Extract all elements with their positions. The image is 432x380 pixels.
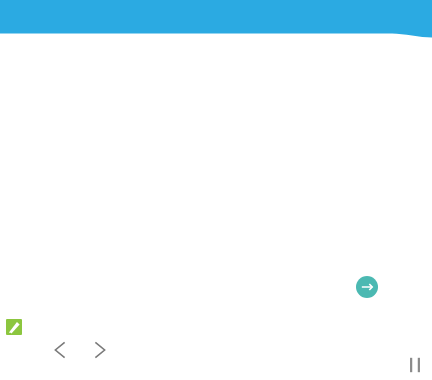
button[interactable]: Previous [46,336,74,364]
button[interactable]: Pause [403,353,427,377]
button[interactable]: Next page [86,336,114,364]
button[interactable]: Next [356,276,378,298]
button[interactable]: Edit [6,319,22,335]
